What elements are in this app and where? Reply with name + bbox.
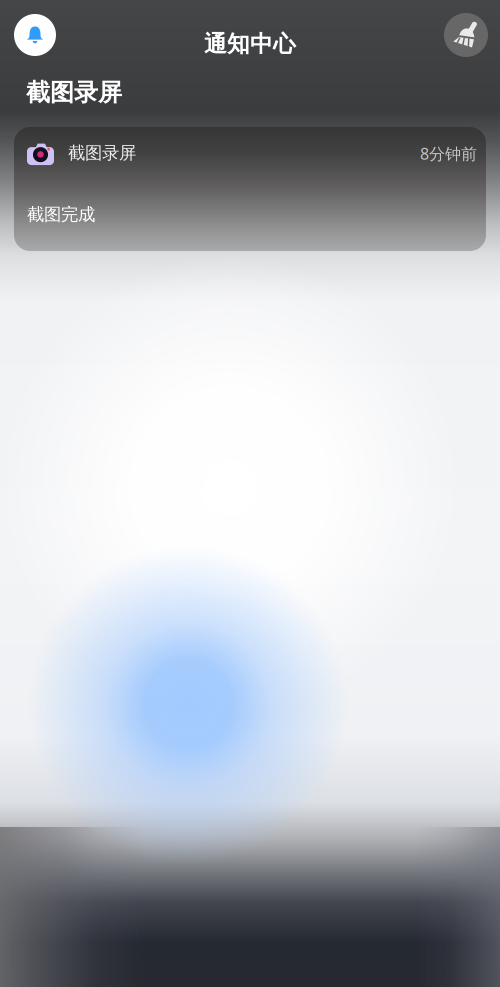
button[interactable]: 通知 xyxy=(14,14,56,56)
button[interactable]: 截图录屏 xyxy=(14,127,486,251)
staticText: 截图录屏 xyxy=(68,142,136,164)
staticText: 截图完成 xyxy=(27,204,95,225)
staticText: 通知中心 xyxy=(204,30,296,58)
staticText: 8分钟前 xyxy=(420,143,477,164)
button[interactable]: 清理 xyxy=(444,13,488,57)
staticText: 截图录屏 xyxy=(26,78,122,107)
